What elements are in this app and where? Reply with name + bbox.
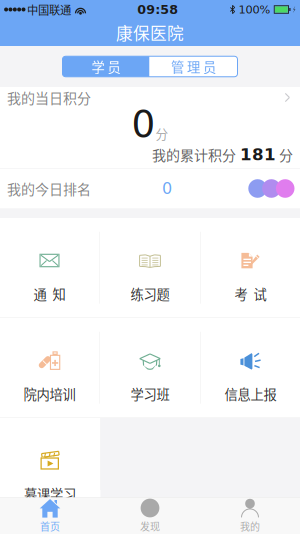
staticText: 信息上报 <box>224 384 276 403</box>
staticText: 0 <box>162 179 172 198</box>
staticText: 中国联通 <box>27 1 71 18</box>
staticText: 我的 <box>240 519 260 533</box>
button[interactable]: 首页 <box>0 497 100 534</box>
staticText: 首页 <box>40 519 60 533</box>
button[interactable]: 信息上报 <box>200 318 300 417</box>
button[interactable]: 练习题 <box>100 218 200 317</box>
button[interactable]: 管 理 员 <box>149 56 237 77</box>
button[interactable]: 我的当日积分 <box>0 85 300 109</box>
staticText: 09:58 <box>137 2 178 17</box>
button[interactable]: 通 知 <box>0 218 99 317</box>
button[interactable]: 学习班 <box>100 318 200 417</box>
button[interactable]: 学 员 <box>62 56 149 77</box>
button[interactable]: 我的 <box>200 497 300 534</box>
button[interactable]: 我的今日排名 <box>0 168 300 208</box>
staticText: 院内培训 <box>23 384 75 403</box>
staticText: 慕课学习 <box>24 484 76 503</box>
staticText: 康保医院 <box>116 20 184 44</box>
staticText: 练习题 <box>130 284 169 303</box>
staticText: 管 理 员 <box>171 57 216 76</box>
staticText: 我的累计积分 <box>152 144 236 165</box>
button[interactable]: 慕课学习 <box>0 418 100 517</box>
staticText: 分 <box>279 144 293 165</box>
staticText: 通 知 <box>33 284 65 303</box>
staticText: 我的当日积分 <box>7 87 91 108</box>
button[interactable]: 院内培训 <box>0 318 99 417</box>
staticText: 0 <box>131 102 155 146</box>
button[interactable]: 考 试 <box>200 218 300 317</box>
staticText: 181 <box>240 145 276 164</box>
staticText: 考 试 <box>234 284 266 303</box>
staticText: 我的今日排名 <box>7 178 91 199</box>
staticText: 分 <box>155 124 168 143</box>
staticText: 学习班 <box>130 384 169 403</box>
button[interactable]: 发现 <box>100 497 200 534</box>
staticText: 发现 <box>140 519 160 533</box>
staticText: 100% <box>238 3 270 16</box>
staticText: 学 员 <box>91 57 120 76</box>
